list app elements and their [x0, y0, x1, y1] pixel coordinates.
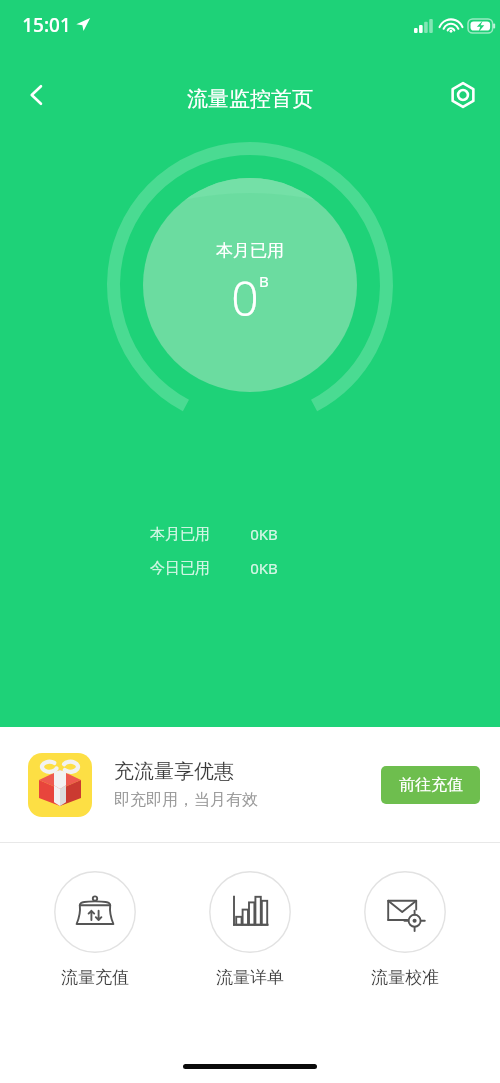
staticText: 本月已用 — [150, 525, 210, 544]
button[interactable]: 流量充值 — [35, 871, 155, 988]
button[interactable]: Settings — [436, 68, 490, 122]
staticText: 流量充值 — [61, 967, 129, 988]
staticText: 0KB — [250, 524, 278, 544]
staticText: 前往充值 — [399, 775, 463, 795]
staticText: 即充即用，当月有效 — [114, 790, 258, 810]
staticText: 今日已用 — [150, 559, 210, 578]
staticText: 0KB — [250, 558, 278, 578]
staticText: B — [259, 271, 269, 291]
staticText: 15:01 — [22, 12, 71, 38]
staticText: 流量监控首页 — [187, 86, 313, 112]
button[interactable]: Back — [10, 68, 64, 122]
button[interactable]: 充流量享优惠 — [0, 727, 500, 842]
staticText: 0 — [231, 265, 259, 330]
staticText: 充流量享优惠 — [114, 759, 234, 784]
button[interactable]: 流量详单 — [190, 871, 310, 988]
staticText: 本月已用 — [216, 240, 284, 261]
staticText: 流量详单 — [216, 967, 284, 988]
button[interactable]: 前往充值 — [381, 766, 480, 804]
staticText: 流量校准 — [371, 967, 439, 988]
button[interactable]: 流量校准 — [345, 871, 465, 988]
